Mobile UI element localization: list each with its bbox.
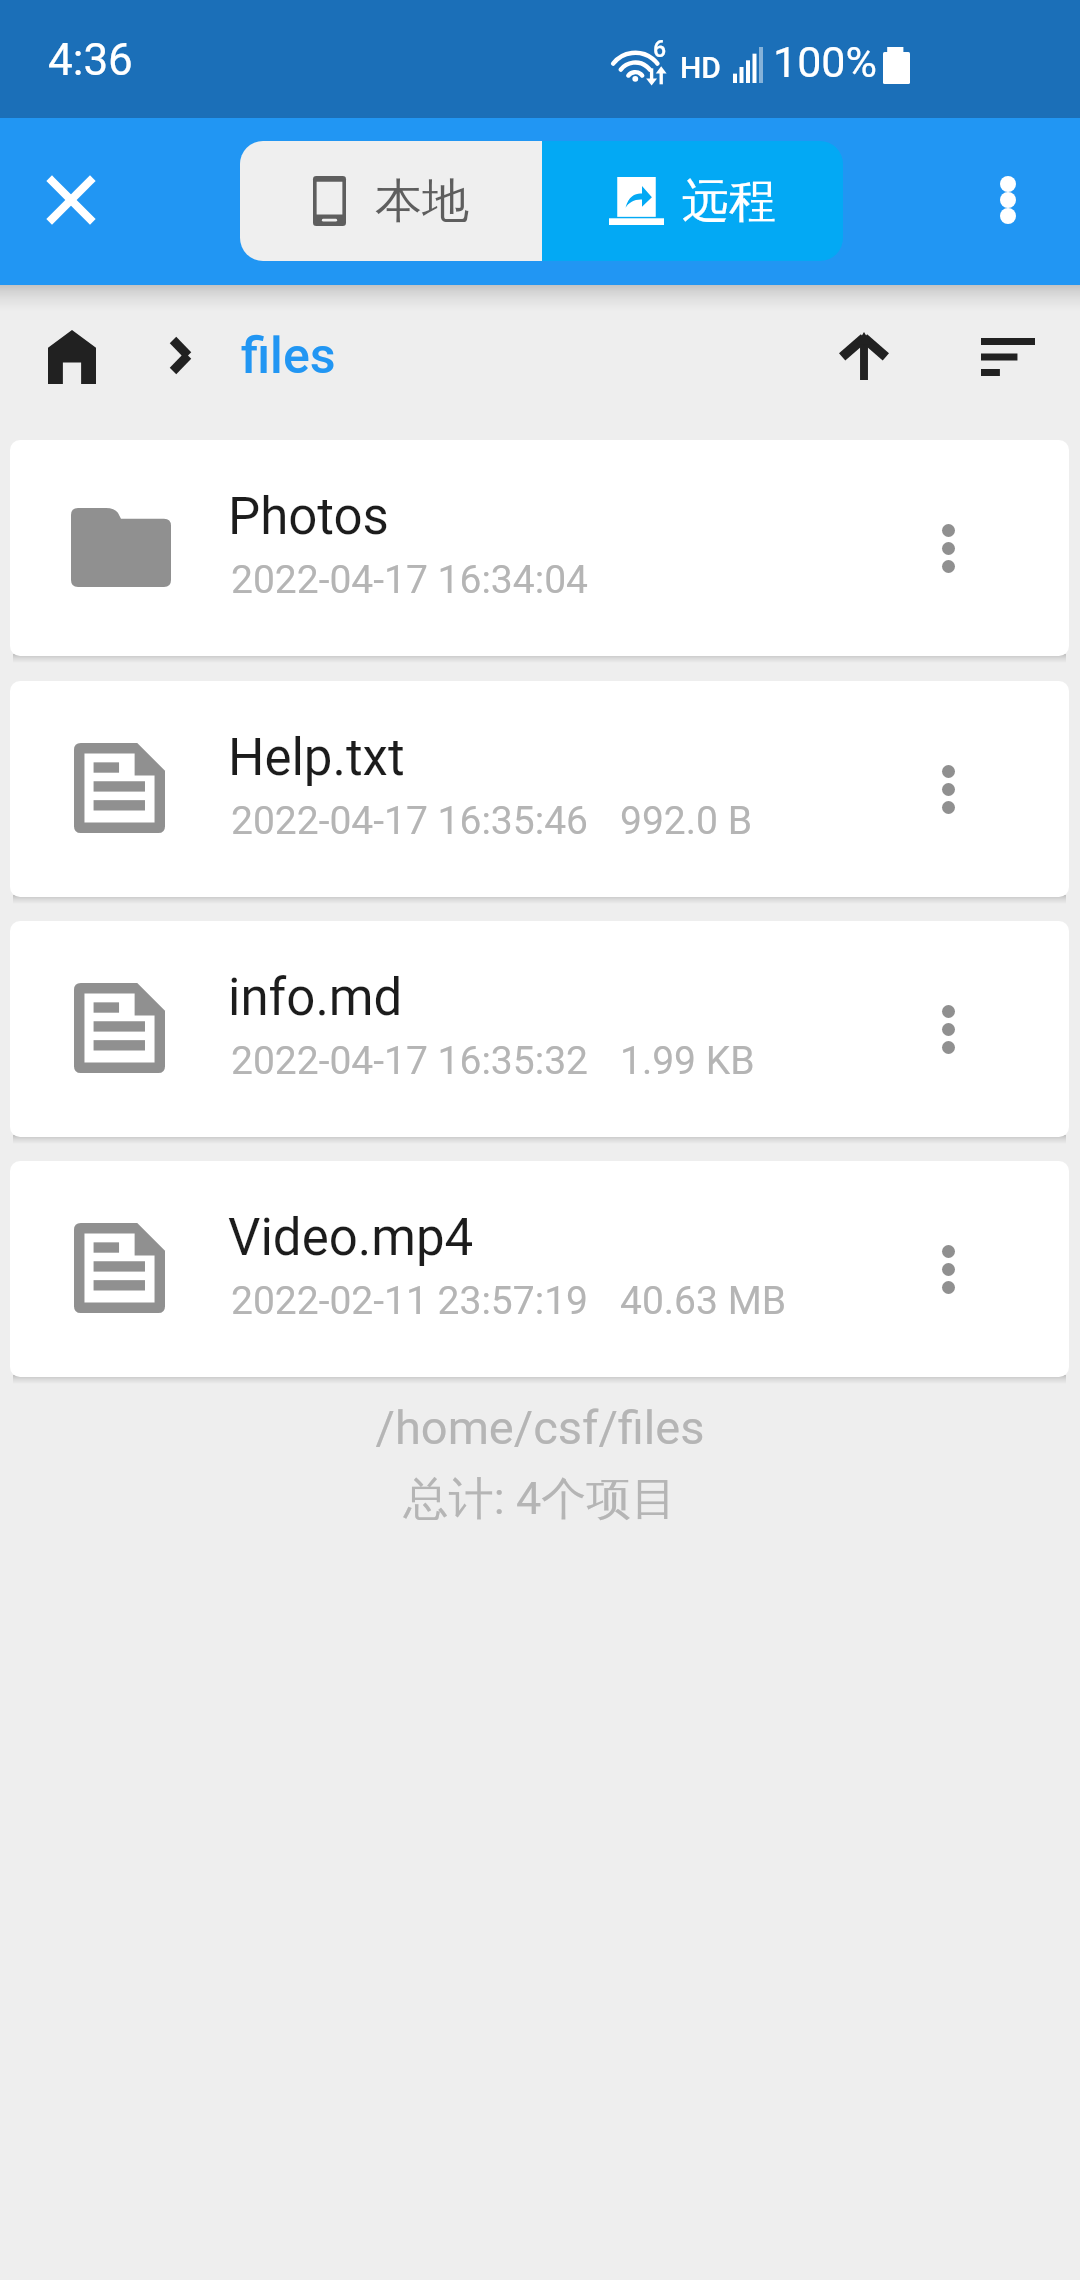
button[interactable]: More options — [964, 156, 1052, 244]
button[interactable]: 本地 — [240, 141, 542, 261]
button[interactable]: Item menu — [904, 745, 992, 833]
staticText: 6 — [653, 36, 667, 63]
staticText: 2022-02-11 23:57:19 — [231, 1278, 588, 1324]
button[interactable]: Home — [28, 313, 116, 401]
staticText: Help.txt — [228, 728, 405, 788]
button[interactable]: Item menu — [904, 1225, 992, 1313]
button[interactable]: 远程 — [542, 141, 843, 261]
staticText: 4:36 — [48, 34, 133, 86]
button[interactable]: info.md — [10, 921, 1069, 1137]
button[interactable]: Item menu — [904, 504, 992, 592]
staticText: 2022-04-17 16:35:32 — [231, 1038, 588, 1084]
button[interactable]: Help.txt — [10, 681, 1069, 897]
button[interactable]: Go up — [819, 311, 909, 401]
staticText: /home/csf/files — [0, 1400, 1080, 1455]
staticText: 1.99 KB — [620, 1038, 755, 1084]
button[interactable]: Item menu — [904, 985, 992, 1073]
staticText: 本地 — [375, 172, 469, 231]
staticText: Photos — [228, 487, 389, 547]
button[interactable]: Close — [27, 156, 115, 244]
staticText: HD — [680, 50, 721, 85]
button[interactable]: Sort — [963, 312, 1053, 402]
button[interactable]: Photos — [10, 440, 1069, 656]
button[interactable]: files — [241, 327, 336, 386]
staticText: 992.0 B — [620, 798, 752, 844]
staticText: 2022-04-17 16:35:46 — [231, 798, 588, 844]
staticText: 40.63 MB — [620, 1278, 786, 1324]
button[interactable]: Video.mp4 — [10, 1161, 1069, 1377]
staticText: 2022-04-17 16:34:04 — [231, 557, 588, 603]
staticText: 远程 — [682, 172, 776, 231]
staticText: 100% — [773, 37, 877, 87]
staticText: Video.mp4 — [228, 1208, 474, 1268]
staticText: info.md — [228, 968, 403, 1028]
staticText: 总计: 4个项目 — [0, 1471, 1080, 1528]
